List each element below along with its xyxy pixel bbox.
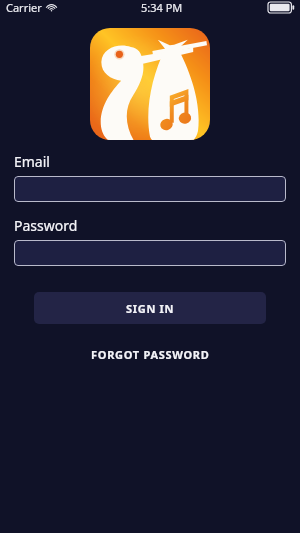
staticText: Password	[14, 216, 78, 235]
staticText: Carrier	[6, 0, 42, 15]
staticText: Email	[14, 152, 50, 171]
staticText: 5:34 PM	[141, 0, 183, 15]
button[interactable]: SIGN IN	[34, 292, 266, 324]
staticText: FORGOT PASSWORD	[91, 347, 210, 362]
button[interactable]	[14, 240, 286, 266]
staticText: SIGN IN	[126, 301, 175, 316]
button[interactable]	[14, 176, 286, 202]
button[interactable]: FORGOT PASSWORD	[81, 342, 220, 367]
